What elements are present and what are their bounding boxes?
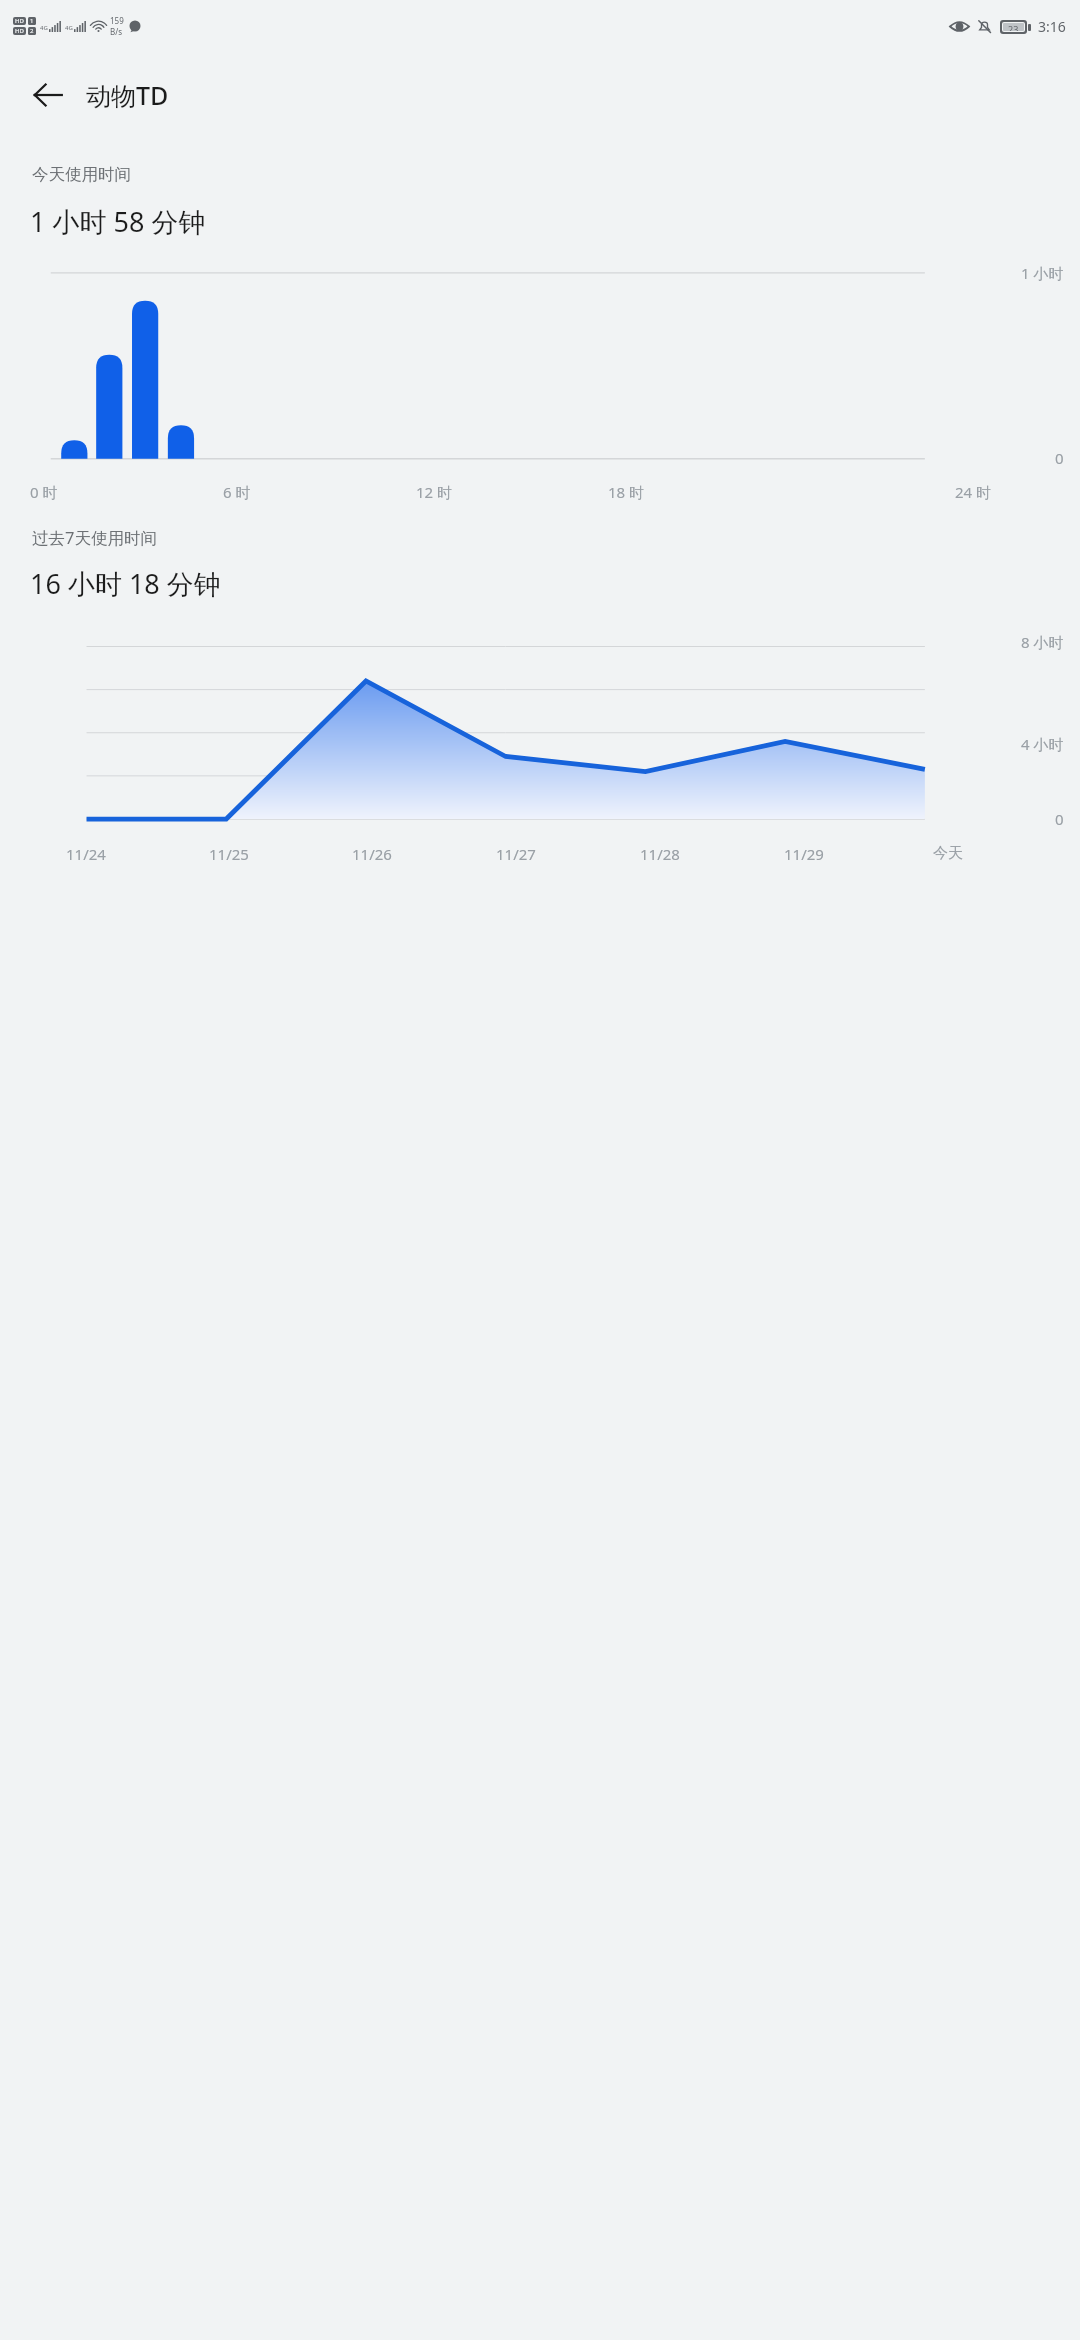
staticText: 4G	[40, 24, 48, 32]
staticText: 过去7天使用时间	[32, 526, 157, 549]
staticText: 11/26	[352, 844, 392, 864]
staticText: 23	[1008, 23, 1019, 31]
staticText: 11/27	[496, 844, 536, 864]
staticText: 11/28	[640, 844, 680, 864]
staticText: 8 小时	[1021, 632, 1064, 652]
staticText: B/s	[110, 26, 123, 37]
staticText: 0	[1055, 809, 1064, 829]
staticText: 11/24	[66, 844, 106, 864]
staticText: 今天	[933, 844, 963, 863]
staticText: 159	[110, 15, 124, 26]
staticText: 2	[30, 27, 34, 35]
staticText: 11/29	[784, 844, 824, 864]
staticText: 0	[1055, 448, 1064, 468]
staticText: HD	[15, 17, 24, 25]
staticText: 24 时	[955, 482, 992, 502]
staticText: 4G	[65, 24, 73, 32]
staticText: 4 小时	[1021, 734, 1064, 754]
staticText: 18 时	[608, 482, 645, 502]
staticText: 今天使用时间	[32, 164, 131, 185]
staticText: 动物TD	[86, 78, 169, 112]
staticText: 1	[30, 17, 34, 25]
staticText: 3:16	[1038, 17, 1066, 36]
staticText: 16 小时 18 分钟	[30, 565, 221, 602]
staticText: 1 小时	[1021, 263, 1064, 283]
staticText: 11/25	[209, 844, 249, 864]
staticText: HD	[15, 27, 24, 35]
staticText: 1 小时 58 分钟	[30, 203, 206, 240]
staticText: 12 时	[416, 482, 453, 502]
staticText: 0 时	[30, 482, 58, 502]
staticText: 6 时	[223, 482, 251, 502]
button[interactable]: Back	[20, 67, 76, 123]
